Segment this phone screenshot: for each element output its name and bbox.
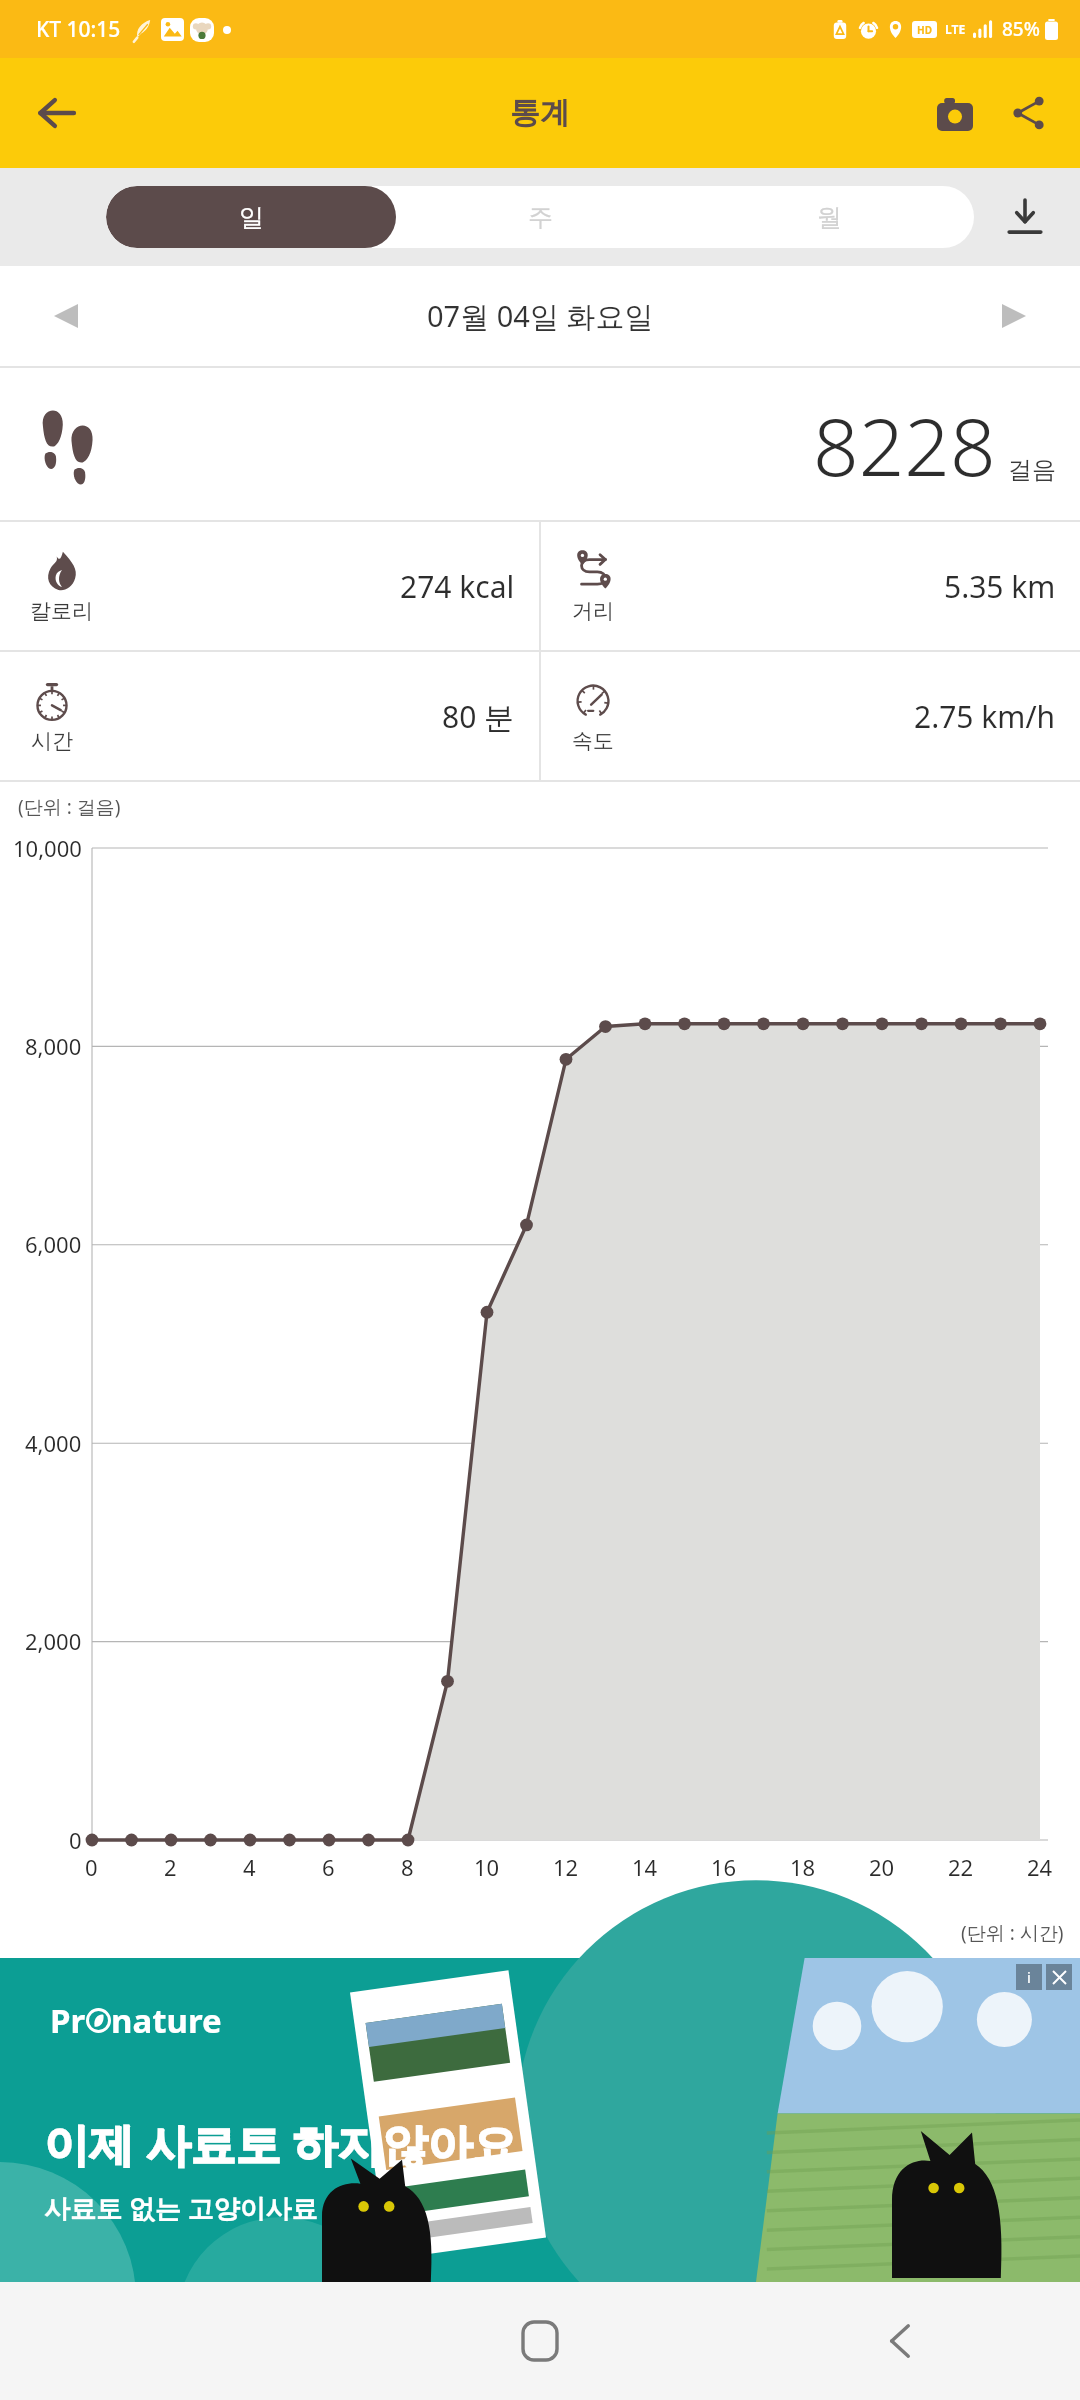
staticText: 0 bbox=[85, 1852, 98, 1882]
staticText: 4 bbox=[243, 1852, 256, 1882]
button[interactable]: Previous day bbox=[34, 284, 98, 348]
staticText: 22 bbox=[948, 1852, 974, 1882]
staticText: 16 bbox=[711, 1852, 737, 1882]
staticText: 85% bbox=[1002, 16, 1040, 42]
staticText: i bbox=[1027, 1967, 1031, 1987]
staticText: 속도 bbox=[572, 728, 614, 754]
button[interactable]: Download bbox=[992, 184, 1058, 250]
button[interactable]: Pr bbox=[0, 1958, 1080, 2282]
staticText: 8,000 bbox=[25, 1031, 82, 1061]
staticText: 통계 bbox=[510, 94, 570, 132]
button[interactable]: Ad info bbox=[1016, 1964, 1042, 1990]
staticText: Pr bbox=[50, 1998, 86, 2043]
staticText: KT 10:15 bbox=[36, 15, 121, 44]
button[interactable]: Next day bbox=[982, 284, 1046, 348]
staticText: 2.75 km/h bbox=[914, 696, 1056, 737]
staticText: 월 bbox=[817, 202, 842, 233]
staticText: 07월 04일 화요일 bbox=[427, 296, 654, 336]
staticText: HD bbox=[917, 23, 932, 37]
staticText: nature bbox=[111, 1998, 222, 2043]
button[interactable]: Back bbox=[720, 2282, 1080, 2400]
button[interactable]: Share bbox=[996, 80, 1062, 146]
button[interactable]: 주 bbox=[396, 186, 685, 248]
staticText: (단위 : 걸음) bbox=[18, 794, 121, 820]
staticText: 24 bbox=[1027, 1852, 1053, 1882]
staticText: LTE bbox=[945, 21, 966, 37]
staticText: 사료토 없는 고양이사료 bbox=[44, 2190, 318, 2226]
button[interactable]: 월 bbox=[685, 186, 974, 248]
staticText: 8 bbox=[401, 1852, 414, 1882]
button[interactable]: 속도 bbox=[541, 652, 1080, 780]
staticText: 시간 bbox=[31, 728, 73, 754]
staticText: 18 bbox=[790, 1852, 816, 1882]
staticText: 80 분 bbox=[442, 696, 515, 737]
staticText: 20 bbox=[869, 1852, 895, 1882]
button[interactable]: Camera bbox=[922, 80, 988, 146]
staticText: 14 bbox=[632, 1852, 658, 1882]
staticText: 이제 사료토 하지않아요 bbox=[44, 2113, 518, 2174]
button[interactable]: Close ad bbox=[1046, 1964, 1072, 1990]
staticText: 274 kcal bbox=[400, 566, 515, 607]
staticText: 6 bbox=[322, 1852, 335, 1882]
staticText: 5.35 km bbox=[944, 566, 1056, 607]
staticText: 2,000 bbox=[25, 1626, 82, 1656]
button[interactable]: 칼로리 bbox=[0, 522, 539, 650]
button[interactable]: 일 bbox=[106, 186, 396, 248]
staticText: 걸음 bbox=[1008, 455, 1056, 485]
staticText: 12 bbox=[553, 1852, 579, 1882]
staticText: 2 bbox=[164, 1852, 177, 1882]
button[interactable]: Back bbox=[22, 78, 92, 148]
button[interactable]: 시간 bbox=[0, 652, 539, 780]
staticText: (단위 : 시간) bbox=[961, 1920, 1064, 1946]
staticText: 10,000 bbox=[13, 833, 82, 863]
button[interactable]: Home bbox=[360, 2282, 720, 2400]
staticText: 칼로리 bbox=[30, 598, 93, 624]
staticText: 4,000 bbox=[25, 1428, 82, 1458]
staticText: 6,000 bbox=[25, 1229, 82, 1259]
staticText: 8228 bbox=[813, 390, 996, 499]
staticText: 10 bbox=[474, 1852, 500, 1882]
staticText: 0 bbox=[69, 1825, 82, 1855]
button[interactable]: 거리 bbox=[541, 522, 1080, 650]
staticText: 거리 bbox=[572, 598, 614, 624]
staticText: 주 bbox=[528, 202, 553, 233]
staticText: 일 bbox=[239, 202, 264, 233]
